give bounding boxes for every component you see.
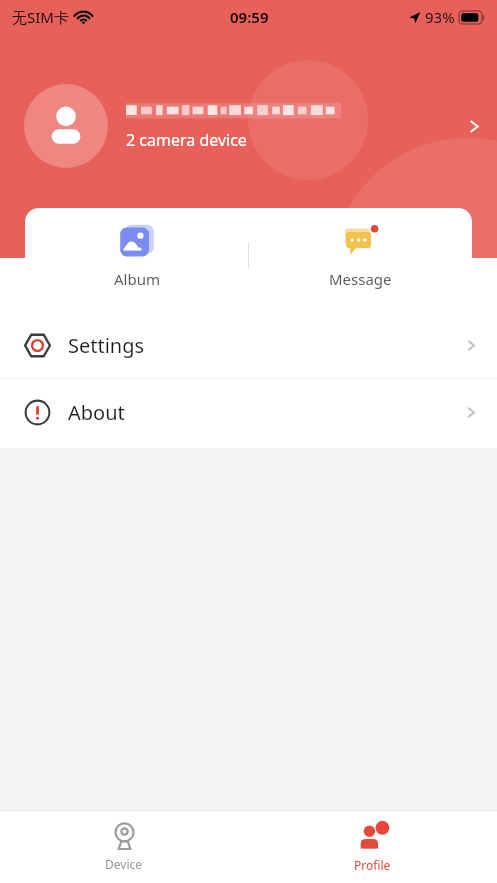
- other: Device: [110, 822, 139, 851]
- other: Profile: [357, 821, 388, 852]
- button[interactable]: Album: [25, 208, 248, 302]
- staticText: Message: [329, 269, 392, 289]
- staticText: 2 camera device: [126, 129, 247, 151]
- staticText: Settings: [68, 332, 145, 359]
- button[interactable]: Profile: [332, 815, 413, 879]
- staticText: 93%: [425, 7, 455, 27]
- button[interactable]: Device: [83, 816, 165, 878]
- button[interactable]: About: [0, 379, 497, 445]
- staticText: Album: [114, 269, 160, 289]
- staticText: 无SIM卡: [12, 7, 69, 27]
- button[interactable]: Message: [249, 208, 472, 302]
- button[interactable]: 2 camera device: [0, 84, 497, 168]
- staticText: Profile: [354, 857, 391, 873]
- button[interactable]: Settings: [0, 312, 497, 378]
- staticText: About: [68, 399, 125, 426]
- staticText: Device: [105, 856, 143, 872]
- staticText: 09:59: [230, 7, 269, 27]
